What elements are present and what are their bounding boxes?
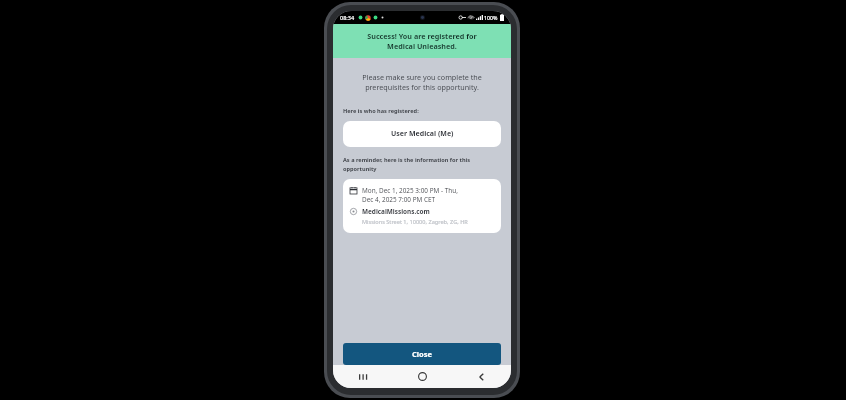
staticText: 100% bbox=[484, 14, 498, 21]
button[interactable]: Back bbox=[452, 365, 511, 388]
button[interactable]: Close bbox=[343, 343, 501, 365]
button[interactable]: Home bbox=[393, 365, 452, 388]
staticText: As a reminder, here is the information f… bbox=[343, 156, 471, 172]
staticText: Mon, Dec 1, 2025 3:00 PM - Thu, Dec 4, 2… bbox=[362, 186, 458, 204]
staticText: Please make sure you complete the prereq… bbox=[343, 72, 501, 92]
staticText: User Medical (Me) bbox=[391, 129, 454, 139]
staticText: Close bbox=[412, 349, 432, 359]
staticText: Missions Street 1, 10000, Zagreb, ZG, HR bbox=[362, 218, 468, 226]
button[interactable]: Recent apps bbox=[333, 365, 393, 388]
button[interactable]: Mon, Dec 1, 2025 3:00 PM - Thu, Dec 4, 2… bbox=[343, 179, 501, 233]
button[interactable]: User Medical (Me) bbox=[343, 121, 501, 147]
staticText: MedicalMissions.com bbox=[362, 207, 430, 216]
staticText: 08:34 bbox=[340, 14, 355, 21]
staticText: Success! You are registered for Medical … bbox=[341, 31, 503, 51]
staticText: Here is who has registered: bbox=[343, 107, 419, 115]
